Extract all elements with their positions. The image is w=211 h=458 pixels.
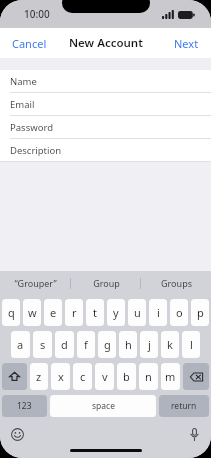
button[interactable]: n <box>139 363 158 390</box>
staticText: n <box>145 369 152 384</box>
staticText: return <box>171 400 197 412</box>
button[interactable]: Password <box>0 116 211 138</box>
button[interactable]: e <box>44 299 62 326</box>
button[interactable]: q <box>2 299 20 326</box>
staticText: k <box>167 337 173 352</box>
staticText: Password <box>10 121 53 134</box>
staticText: g <box>104 337 111 352</box>
staticText: f <box>84 337 88 352</box>
button[interactable]: s <box>33 331 52 358</box>
staticText: p <box>197 305 204 320</box>
button[interactable]: Dictation <box>185 425 203 443</box>
staticText: r <box>72 305 77 320</box>
button[interactable]: Emoji keyboard <box>8 425 26 443</box>
staticText: y <box>113 305 119 320</box>
button[interactable]: o <box>170 299 188 326</box>
button[interactable]: j <box>140 331 158 358</box>
button[interactable]: h <box>119 331 137 358</box>
button[interactable]: Cancel <box>0 30 59 57</box>
staticText: w <box>28 305 37 320</box>
staticText: s <box>40 337 46 352</box>
button[interactable]: Email <box>0 93 211 115</box>
staticText: 123 <box>17 400 32 412</box>
staticText: New Account <box>69 35 143 51</box>
button[interactable]: k <box>161 331 179 358</box>
button[interactable]: “Grouper” <box>0 271 71 295</box>
staticText: e <box>50 305 57 320</box>
button[interactable]: u <box>128 299 146 326</box>
button[interactable]: b <box>117 363 136 390</box>
button[interactable]: Delete <box>183 363 209 390</box>
button[interactable]: x <box>51 363 70 390</box>
button[interactable]: Name <box>0 70 211 92</box>
staticText: 10:00 <box>24 7 50 21</box>
button[interactable]: i <box>149 299 167 326</box>
button[interactable]: d <box>55 331 74 358</box>
staticText: j <box>148 337 151 352</box>
button[interactable]: 123 <box>2 395 47 417</box>
button[interactable]: Shift <box>2 363 27 390</box>
staticText: t <box>93 305 97 320</box>
staticText: Group <box>93 277 120 289</box>
button[interactable]: a <box>11 331 30 358</box>
button[interactable]: Next <box>162 30 211 57</box>
button[interactable]: Group <box>71 271 141 295</box>
button[interactable]: g <box>98 331 116 358</box>
staticText: h <box>125 337 132 352</box>
staticText: x <box>58 369 64 384</box>
staticText: “Grouper” <box>14 277 57 289</box>
staticText: m <box>165 369 176 384</box>
staticText: Description <box>10 144 62 157</box>
staticText: u <box>134 305 141 320</box>
staticText: a <box>17 337 24 352</box>
staticText: z <box>36 369 42 384</box>
button[interactable]: w <box>23 299 41 326</box>
staticText: c <box>80 369 86 384</box>
button[interactable]: z <box>30 363 48 390</box>
staticText: Groups <box>161 277 192 289</box>
staticText: Name <box>10 75 37 88</box>
staticText: q <box>8 305 15 320</box>
button[interactable]: t <box>86 299 104 326</box>
button[interactable]: return <box>159 395 209 417</box>
button[interactable]: Description <box>0 139 211 161</box>
staticText: i <box>157 305 160 320</box>
button[interactable]: f <box>77 331 95 358</box>
button[interactable]: l <box>182 331 200 358</box>
staticText: space <box>92 400 115 412</box>
button[interactable]: v <box>95 363 114 390</box>
button[interactable]: y <box>107 299 125 326</box>
button[interactable]: p <box>191 299 209 326</box>
button[interactable]: c <box>73 363 92 390</box>
staticText: Email <box>10 98 35 111</box>
staticText: b <box>123 369 130 384</box>
staticText: Cancel <box>12 36 47 51</box>
staticText: Next <box>174 36 199 51</box>
staticText: d <box>61 337 68 352</box>
button[interactable]: Groups <box>141 271 211 295</box>
button[interactable]: r <box>65 299 83 326</box>
button[interactable]: m <box>161 363 180 390</box>
button[interactable]: space <box>50 395 156 417</box>
staticText: v <box>102 369 108 384</box>
staticText: l <box>190 337 193 352</box>
staticText: o <box>176 305 183 320</box>
